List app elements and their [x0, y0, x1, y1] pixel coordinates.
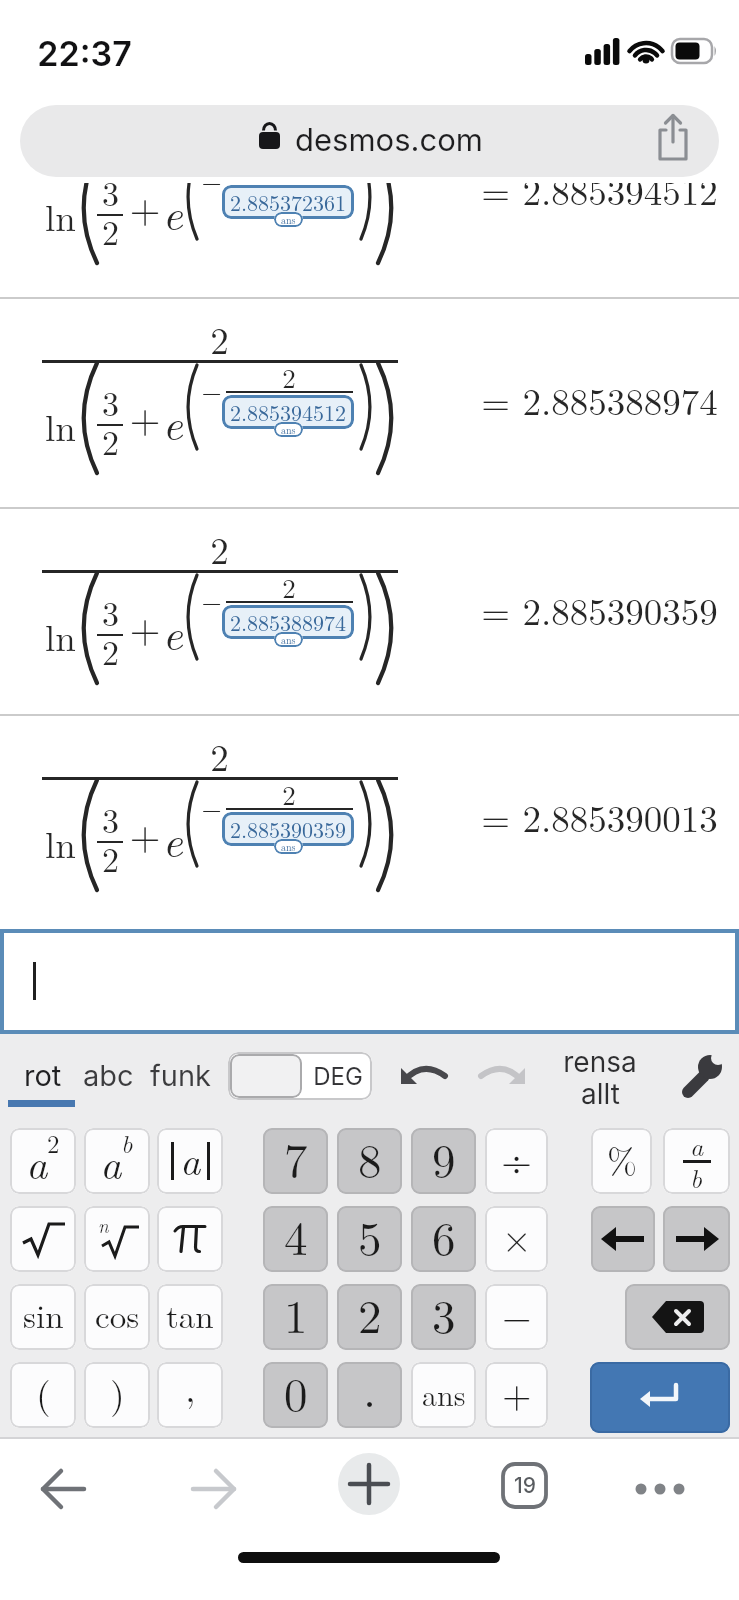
button[interactable]	[663, 1206, 730, 1272]
button[interactable]: ans	[411, 1362, 476, 1428]
staticText: +	[129, 805, 161, 862]
staticText: 19	[514, 1473, 536, 1498]
staticText: +	[502, 1365, 532, 1419]
button[interactable]: 2	[337, 1284, 402, 1350]
button[interactable]: 8	[337, 1128, 402, 1194]
staticText: 2	[210, 522, 229, 574]
staticText: e	[162, 390, 183, 452]
staticText: 2	[47, 1128, 60, 1160]
staticText: tan	[166, 1291, 214, 1338]
button[interactable]	[10, 1206, 76, 1272]
button[interactable]	[40, 1466, 86, 1512]
staticText: −	[201, 372, 222, 409]
staticText: = 2.885390359	[481, 583, 718, 635]
staticText: −	[201, 582, 222, 619]
button[interactable]: )	[84, 1362, 150, 1428]
staticText: = 2.885394512	[481, 183, 718, 215]
button[interactable]	[157, 1206, 223, 1272]
staticText: 3	[102, 378, 119, 426]
button[interactable]: 19	[501, 1462, 548, 1509]
staticText: n	[98, 1212, 109, 1239]
button[interactable]: 1	[263, 1284, 328, 1350]
staticText: 2	[102, 417, 119, 465]
button[interactable]: rot	[12, 1052, 74, 1098]
button[interactable]	[630, 1466, 690, 1512]
button[interactable]	[477, 1058, 527, 1096]
button[interactable]: .	[337, 1362, 402, 1428]
button[interactable]: ÷	[485, 1128, 548, 1194]
staticText: +	[129, 388, 161, 445]
button[interactable]: tan	[157, 1284, 223, 1350]
button[interactable]: funk	[146, 1052, 214, 1098]
staticText: sin	[23, 1291, 64, 1338]
staticText: 4	[284, 1206, 308, 1268]
button[interactable]: 3	[411, 1284, 476, 1350]
button[interactable]	[338, 1453, 400, 1515]
staticText: rot	[24, 1058, 62, 1093]
staticText: 2	[358, 1284, 382, 1346]
button[interactable]: a	[10, 1128, 76, 1194]
button[interactable]: ,	[157, 1362, 223, 1428]
button[interactable]	[679, 1053, 725, 1101]
staticText: %	[607, 1133, 637, 1184]
button[interactable]: +	[485, 1362, 548, 1428]
staticText: 3	[432, 1284, 456, 1346]
button[interactable]: n	[84, 1206, 150, 1272]
button[interactable]: 4	[263, 1206, 328, 1272]
staticText: 3	[102, 588, 119, 636]
staticText: 2	[210, 729, 229, 781]
button[interactable]: 9	[411, 1128, 476, 1194]
staticText: 2.885388974	[230, 606, 347, 637]
staticText: )	[110, 1365, 125, 1419]
staticText: 9	[432, 1128, 456, 1190]
button[interactable]	[625, 1284, 730, 1350]
button[interactable]	[656, 113, 690, 163]
button[interactable]	[555, 1042, 645, 1112]
button[interactable]: 7	[263, 1128, 328, 1194]
button[interactable]	[20, 105, 719, 177]
button[interactable]	[590, 1362, 730, 1433]
staticText: = 2.885390013	[481, 790, 718, 842]
staticText: −	[201, 183, 222, 199]
button[interactable]	[591, 1206, 655, 1272]
button[interactable]: a	[157, 1128, 223, 1194]
button[interactable]: cos	[84, 1284, 150, 1350]
staticText: ln	[45, 399, 76, 451]
staticText: e	[162, 807, 183, 869]
staticText: funk	[150, 1058, 211, 1093]
staticText: 7	[284, 1128, 308, 1190]
staticText: 1	[284, 1284, 308, 1346]
staticText: 2	[102, 627, 119, 675]
staticText: 2	[210, 312, 229, 364]
button[interactable]: 6	[411, 1206, 476, 1272]
button[interactable]: −	[485, 1284, 548, 1350]
button[interactable]: (	[10, 1362, 76, 1428]
staticText: +	[129, 183, 161, 235]
button[interactable]	[191, 1466, 237, 1512]
staticText: 2	[282, 358, 296, 396]
button[interactable]	[228, 1052, 372, 1100]
staticText: 22:37	[37, 33, 132, 74]
staticText: DEG	[313, 1062, 363, 1091]
button[interactable]: abc	[80, 1052, 136, 1098]
button[interactable]: sin	[10, 1284, 76, 1350]
staticText: ans	[281, 423, 296, 437]
button[interactable]: 0	[263, 1362, 328, 1428]
button[interactable]	[399, 1058, 449, 1096]
button[interactable]: %	[591, 1128, 652, 1194]
staticText: +	[129, 598, 161, 655]
staticText: ln	[45, 609, 76, 661]
staticText: 2	[102, 207, 119, 255]
button[interactable]: 5	[337, 1206, 402, 1272]
staticText: .	[363, 1362, 377, 1420]
staticText: ans	[281, 840, 296, 854]
staticText: ,	[185, 1362, 196, 1413]
staticText: ans	[422, 1372, 466, 1415]
staticText: a	[690, 1128, 704, 1164]
staticText: ×	[502, 1209, 532, 1263]
staticText: a	[100, 1132, 122, 1191]
staticText: abc	[83, 1058, 134, 1093]
button[interactable]: ×	[485, 1206, 548, 1272]
button[interactable]: a	[663, 1128, 730, 1194]
button[interactable]: a	[84, 1128, 150, 1194]
